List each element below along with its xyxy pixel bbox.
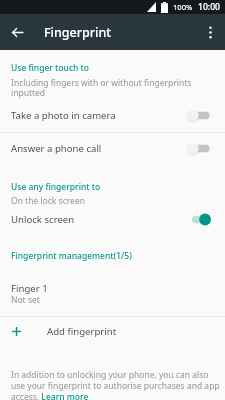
staticText: Use finger touch to [11, 62, 90, 74]
staticText: On the lock screen [11, 195, 85, 207]
staticText: Unlock screen [11, 213, 75, 226]
staticText: 100% [173, 2, 193, 12]
staticText: Fingerprint [44, 24, 112, 41]
staticText: Answer a phone call [11, 142, 102, 155]
staticText: Fingerprint management(1/5) [11, 250, 132, 262]
button[interactable]: Answer a phone call [0, 133, 225, 164]
staticText: Including fingers with or without finger… [11, 77, 197, 98]
staticText: 10:00 [198, 1, 221, 13]
button[interactable]: Add fingerprint [0, 317, 225, 346]
staticText: Add fingerprint [47, 325, 117, 338]
staticText: Finger 1 [11, 282, 48, 295]
staticText: Not set [11, 294, 40, 306]
button[interactable]: Take a photo in camera [0, 98, 225, 132]
button[interactable]: Unlock screen [0, 208, 225, 231]
staticText: Take a photo in camera [11, 109, 116, 122]
button[interactable]: Back [0, 14, 34, 50]
button[interactable]: Finger 1 [0, 282, 225, 307]
staticText: Use any fingerprint to [11, 181, 101, 193]
staticText: In addition to unlocking your phone, you… [11, 369, 221, 400]
button[interactable]: More options [195, 14, 225, 50]
